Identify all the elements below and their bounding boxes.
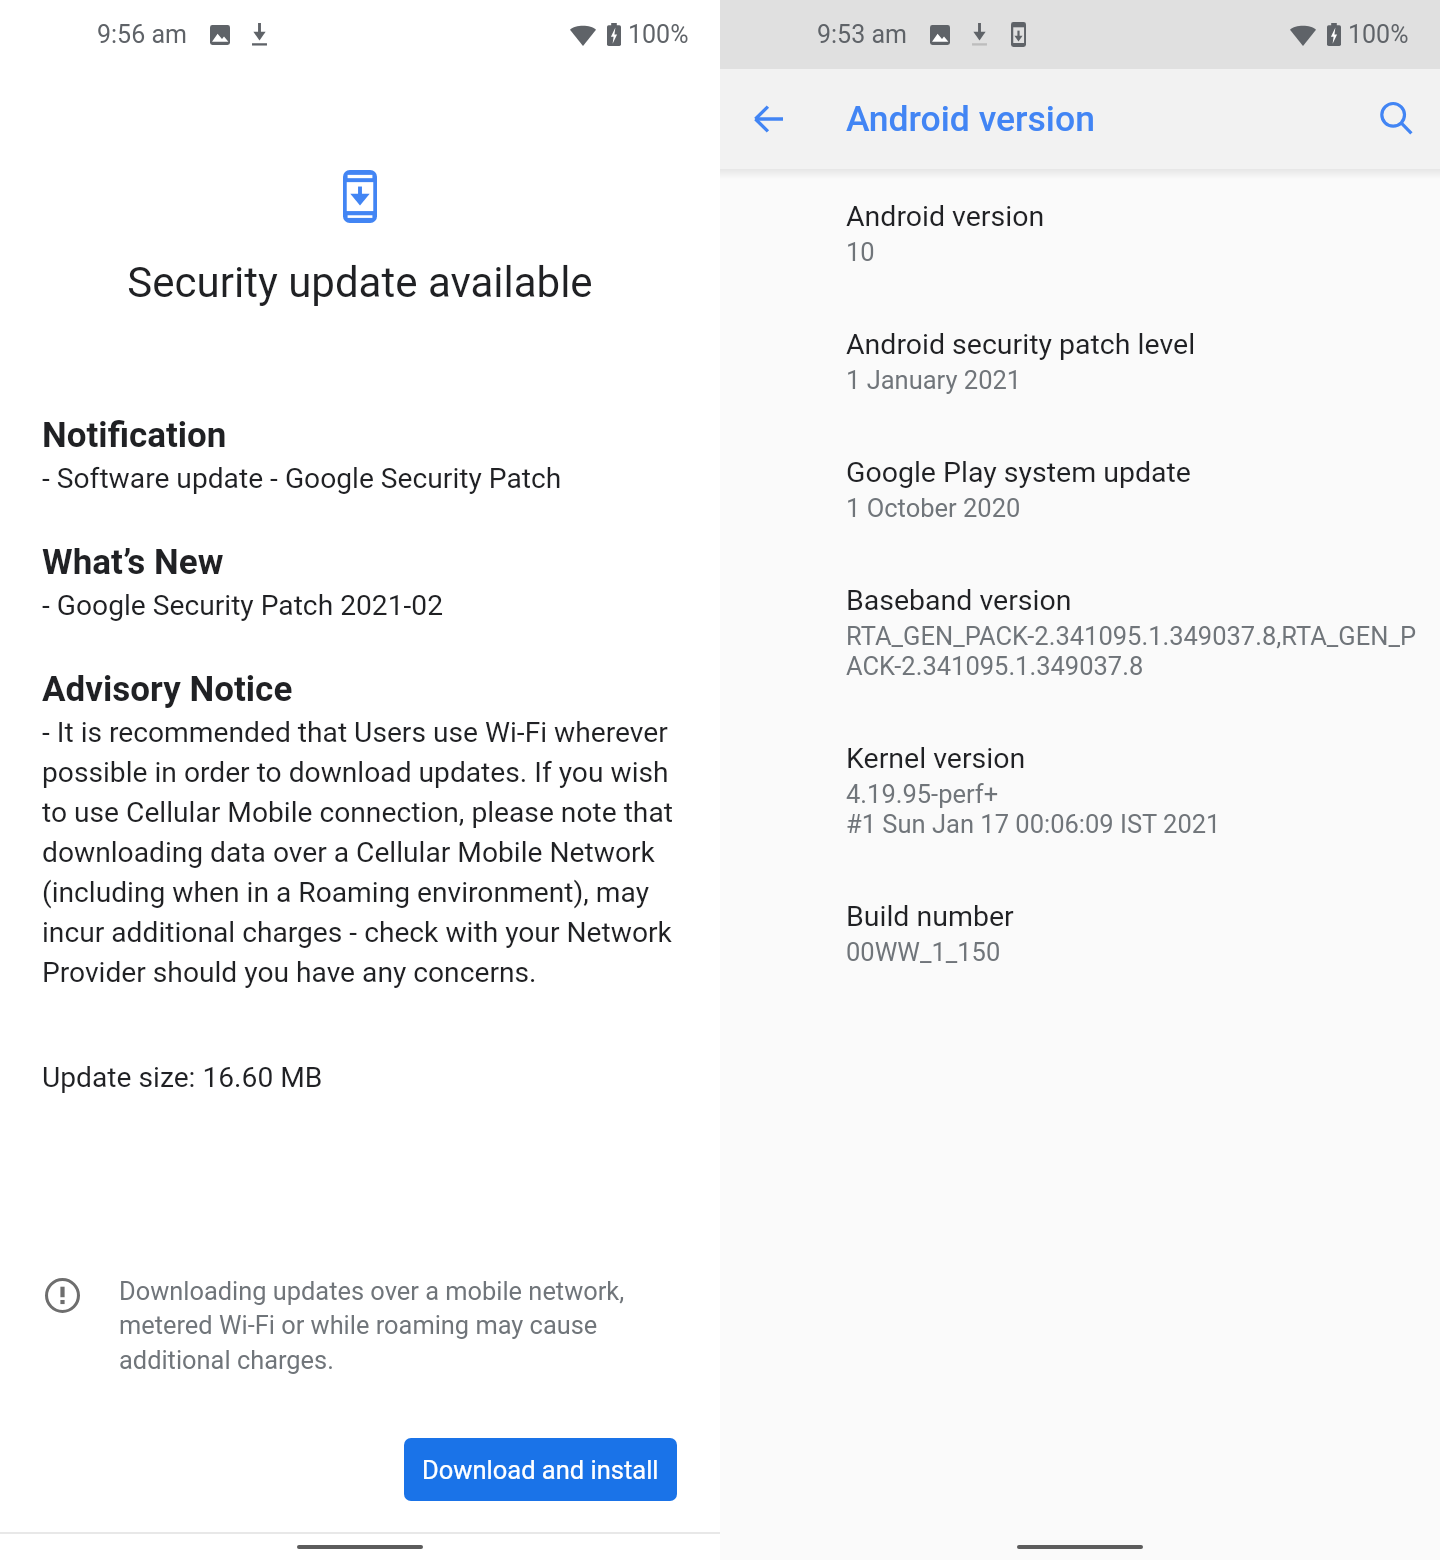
staticText: - It is recommended that Users use Wi-Fi…: [42, 716, 686, 989]
staticText: Android security patch level: [846, 328, 1196, 361]
staticText: 00WW_1_150: [846, 937, 1001, 967]
staticText: 4.19.95-perf+: [846, 779, 999, 809]
staticText: Advisory Notice: [42, 669, 293, 710]
button[interactable]: Android version: [720, 169, 1440, 297]
staticText: Download and install: [422, 1455, 659, 1485]
staticText: Build number: [846, 900, 1014, 933]
staticText: Notification: [42, 415, 227, 456]
staticText: 9:53 am: [817, 20, 907, 49]
staticText: #1 Sun Jan 17 00:06:09 IST 2021: [846, 809, 1221, 839]
staticText: Kernel version: [846, 742, 1026, 775]
button[interactable]: Download and install: [404, 1438, 677, 1501]
staticText: 1 January 2021: [846, 365, 1022, 395]
staticText: 1 October 2020: [846, 493, 1021, 523]
staticText: Update size: 16.60 MB: [42, 1061, 323, 1094]
button[interactable]: Back: [737, 88, 799, 150]
staticText: ACK-2.341095.1.349037.8: [846, 651, 1144, 681]
staticText: Downloading updates over a mobile networ…: [119, 1276, 676, 1376]
staticText: 9:56 am: [97, 20, 187, 49]
staticText: Android version: [846, 200, 1045, 233]
button[interactable]: Search: [1366, 88, 1428, 150]
staticText: 10: [846, 237, 875, 267]
button[interactable]: Build number: [720, 869, 1440, 997]
staticText: 100%: [1348, 20, 1409, 49]
button[interactable]: Baseband version: [720, 553, 1440, 711]
staticText: Android version: [846, 98, 1095, 140]
button[interactable]: Kernel version: [720, 711, 1440, 869]
staticText: Baseband version: [846, 584, 1072, 617]
staticText: - Software update - Google Security Patc…: [42, 462, 562, 495]
staticText: Security update available: [0, 258, 720, 307]
staticText: Google Play system update: [846, 456, 1191, 489]
button[interactable]: Google Play system update: [720, 425, 1440, 553]
staticText: What’s New: [42, 542, 224, 583]
staticText: RTA_GEN_PACK-2.341095.1.349037.8,RTA_GEN…: [846, 621, 1416, 651]
staticText: 100%: [628, 20, 689, 49]
button[interactable]: Android security patch level: [720, 297, 1440, 425]
staticText: - Google Security Patch 2021-02: [42, 589, 443, 622]
